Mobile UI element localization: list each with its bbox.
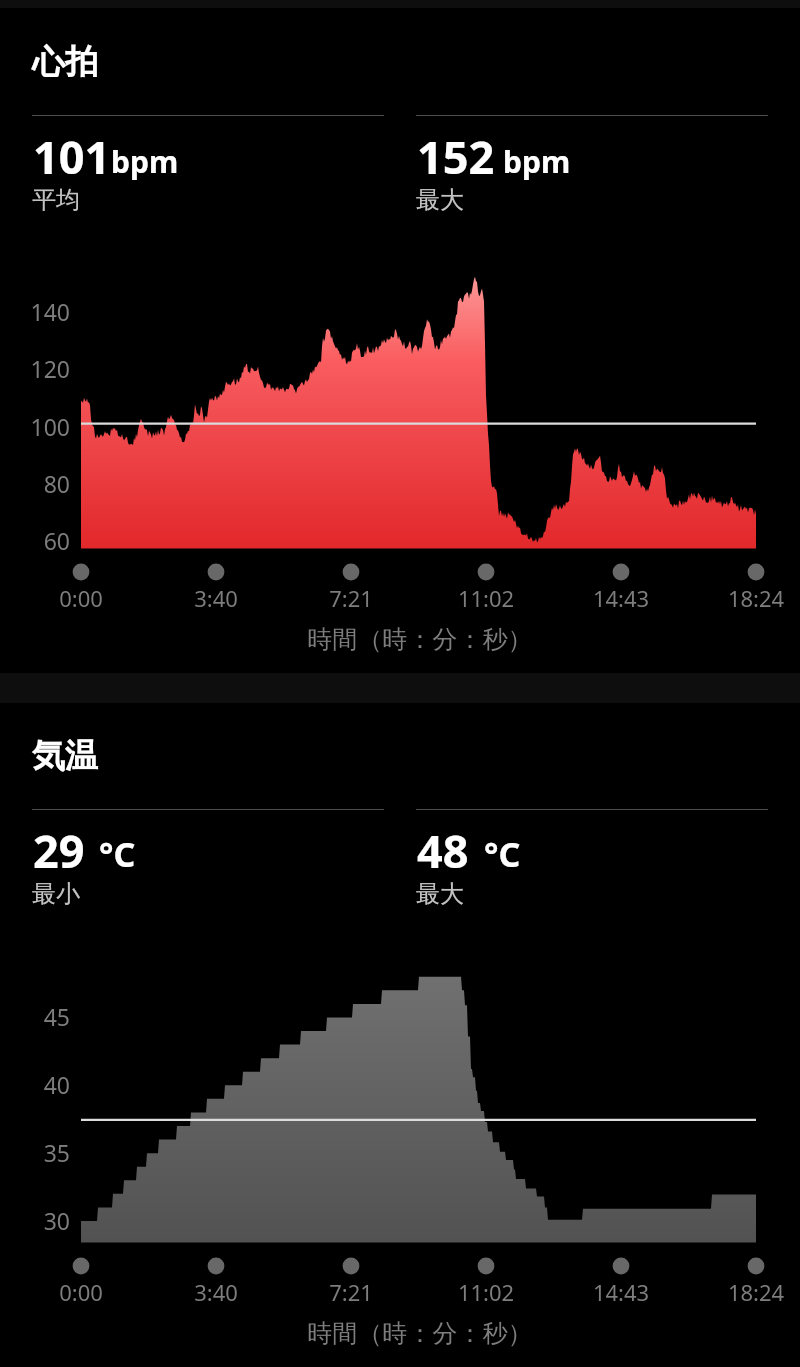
staticText: 48: [417, 820, 469, 881]
staticText: 時間（時：分：秒）: [20, 1318, 800, 1349]
staticText: 3:40: [156, 1277, 276, 1307]
staticText: °C: [99, 831, 136, 877]
staticText: 最小: [32, 879, 80, 909]
staticText: 18:24: [696, 1277, 800, 1307]
staticText: 3:40: [156, 583, 276, 613]
staticText: 7:21: [291, 1277, 411, 1307]
staticText: 11:02: [426, 1277, 546, 1307]
staticText: 0:00: [21, 583, 141, 613]
button[interactable]: 101: [32, 120, 384, 220]
staticText: 60: [2, 525, 70, 556]
button[interactable]: 気温: [32, 726, 392, 780]
button[interactable]: 152: [416, 120, 768, 220]
staticText: 29: [33, 820, 85, 881]
staticText: 14:43: [561, 583, 681, 613]
staticText: 45: [2, 1001, 70, 1032]
staticText: 0:00: [21, 1277, 141, 1307]
button[interactable]: Temperature chart: [81, 964, 756, 1244]
staticText: 最大: [416, 879, 464, 909]
staticText: 101: [33, 126, 111, 187]
staticText: 35: [2, 1137, 70, 1168]
staticText: 気温: [32, 735, 98, 777]
staticText: 14:43: [561, 1277, 681, 1307]
staticText: 最大: [416, 185, 464, 215]
staticText: °C: [484, 831, 521, 877]
staticText: 40: [2, 1069, 70, 1100]
staticText: bpm: [503, 141, 571, 182]
staticText: 7:21: [291, 583, 411, 613]
staticText: 80: [2, 468, 70, 499]
button[interactable]: Heart rate chart: [81, 270, 756, 550]
staticText: 平均: [32, 185, 80, 215]
button[interactable]: 29: [32, 814, 384, 914]
staticText: 心拍: [32, 41, 98, 83]
staticText: 11:02: [426, 583, 546, 613]
staticText: 152: [417, 126, 495, 187]
button[interactable]: 心拍: [32, 32, 392, 86]
staticText: 100: [2, 411, 70, 442]
staticText: 120: [2, 353, 70, 384]
staticText: 140: [2, 296, 70, 327]
staticText: 時間（時：分：秒）: [20, 624, 800, 655]
button[interactable]: 48: [416, 814, 768, 914]
staticText: 18:24: [696, 583, 800, 613]
staticText: 30: [2, 1205, 70, 1236]
staticText: bpm: [111, 141, 179, 182]
